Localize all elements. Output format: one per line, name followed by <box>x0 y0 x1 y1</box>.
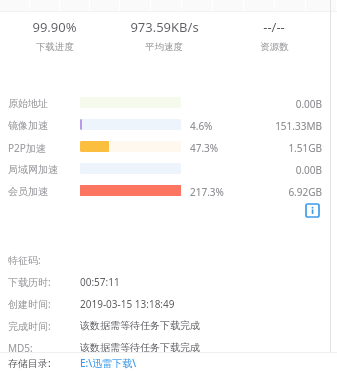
staticText: 4.6% <box>190 119 213 133</box>
staticText: 0.00B <box>295 97 322 111</box>
button[interactable]: 局域网加速 <box>0 158 337 179</box>
button[interactable]: P2P加速 <box>0 136 337 157</box>
staticText: 下载历时: <box>8 275 51 289</box>
button[interactable]: 会员加速 <box>0 180 337 201</box>
staticText: 151.33MB <box>275 119 322 133</box>
button[interactable]: --/-- <box>219 18 329 53</box>
staticText: 该数据需等待任务下载完成 <box>80 341 200 354</box>
staticText: 47.3% <box>190 141 219 155</box>
staticText: MD5: <box>8 341 33 355</box>
button[interactable]: 镜像加速 <box>0 114 337 135</box>
staticText: 99.90% <box>32 18 77 36</box>
staticText: P2P加速 <box>8 141 46 155</box>
staticText: 217.3% <box>190 185 224 199</box>
button[interactable]: 存储目录: <box>0 352 337 371</box>
button[interactable]: 详情信息 <box>305 203 320 218</box>
staticText: 00:57:11 <box>80 275 120 289</box>
staticText: 创建时间: <box>8 297 51 311</box>
staticText: 973.59KB/s <box>130 18 199 36</box>
button[interactable]: MD5: <box>0 337 337 358</box>
staticText: 局域网加速 <box>8 163 58 176</box>
button[interactable]: 完成时间: <box>0 315 337 336</box>
button[interactable]: 原始地址 <box>0 92 337 113</box>
button[interactable]: 下载历时: <box>0 271 337 292</box>
staticText: 镜像加速 <box>8 119 48 132</box>
button[interactable]: 99.90% <box>0 18 109 53</box>
button[interactable]: 特征码: <box>0 249 337 270</box>
staticText: --/-- <box>263 18 285 36</box>
staticText: 存储目录: <box>8 356 51 370</box>
staticText: 会员加速 <box>8 185 48 198</box>
staticText: 0.00B <box>295 163 322 177</box>
staticText: 该数据需等待任务下载完成 <box>80 319 200 332</box>
button[interactable]: 973.59KB/s <box>109 18 219 53</box>
staticText: 2019-03-15 13:18:49 <box>80 297 175 311</box>
staticText: 下载进度 <box>36 41 74 53</box>
staticText: 特征码: <box>8 253 41 267</box>
staticText: 1.51GB <box>288 141 322 155</box>
staticText: 6.92GB <box>288 185 322 199</box>
staticText: 完成时间: <box>8 319 51 333</box>
staticText: E:\迅雷下载\ <box>80 356 136 370</box>
staticText: 资源数 <box>260 41 289 53</box>
staticText: 平均速度 <box>145 41 183 53</box>
staticText: 原始地址 <box>8 97 48 110</box>
button[interactable]: 创建时间: <box>0 293 337 314</box>
